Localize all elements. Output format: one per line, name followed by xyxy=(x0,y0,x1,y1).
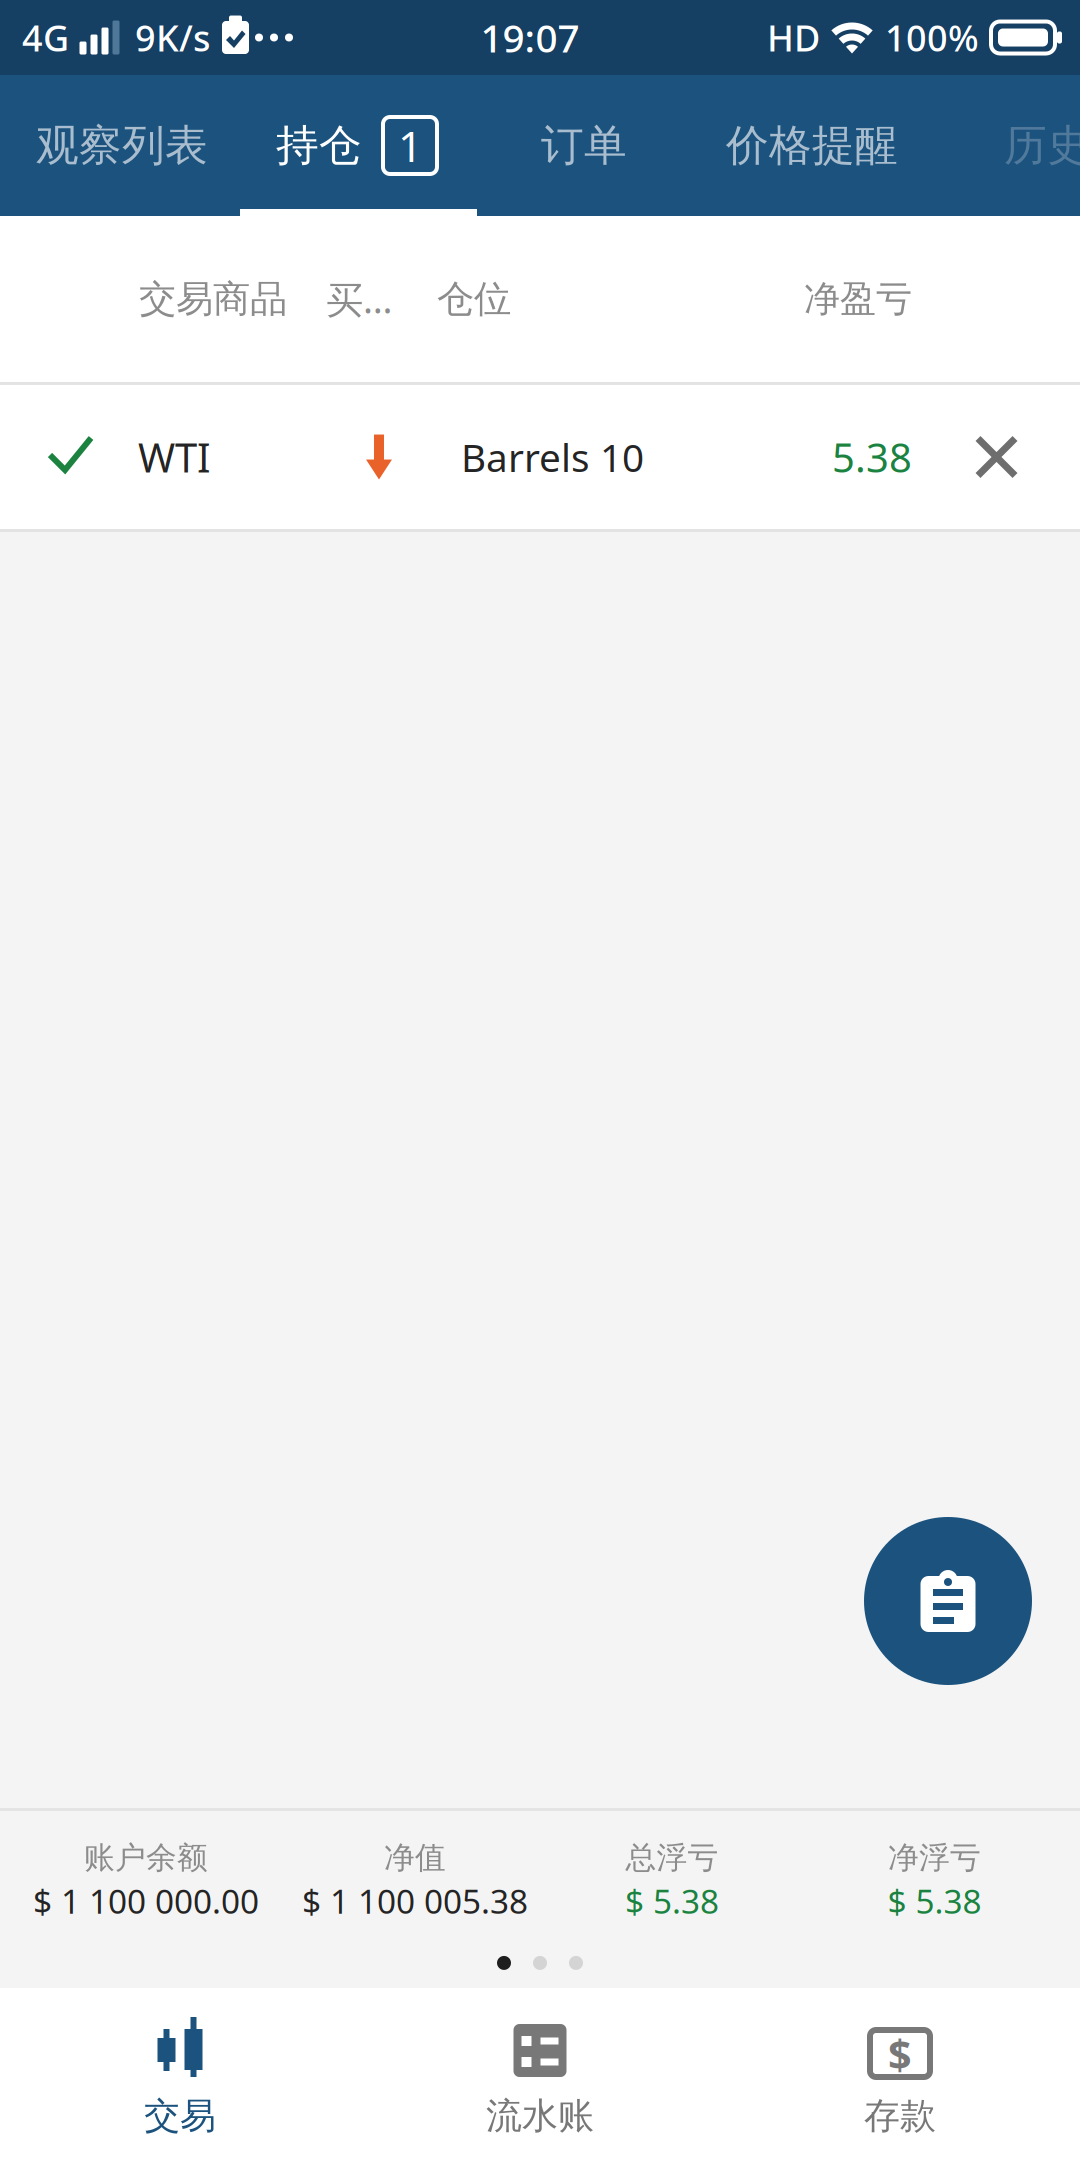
staticText: WTI xyxy=(138,430,211,483)
staticText: 交易 xyxy=(144,2094,216,2138)
staticText: 交易商品 xyxy=(139,276,287,322)
staticText: Barrels 10 xyxy=(461,431,644,483)
staticText: 买… xyxy=(326,274,393,324)
staticText: 订单 xyxy=(541,119,627,172)
staticText: $ 5.38 xyxy=(887,1879,981,1923)
staticText: 净浮亏 xyxy=(888,1839,981,1877)
staticText: 19:07 xyxy=(480,12,579,63)
button[interactable]: 历史 xyxy=(913,75,1080,216)
staticText: 净值 xyxy=(384,1839,446,1877)
staticText: 仓位 xyxy=(437,276,511,322)
staticText: 价格提醒 xyxy=(726,119,898,172)
staticText: 9K/s xyxy=(135,14,210,61)
staticText: HD xyxy=(767,14,820,61)
button[interactable]: 订单 xyxy=(474,75,642,216)
staticText: 100% xyxy=(885,14,979,61)
staticText: 5.38 xyxy=(832,430,912,483)
button[interactable]: 交易 xyxy=(0,1988,360,2160)
button[interactable]: 价格提醒 xyxy=(642,75,913,216)
staticText: $ 1 100 005.38 xyxy=(302,1879,528,1923)
staticText: 流水账 xyxy=(486,2094,594,2138)
staticText: 历史 xyxy=(1004,119,1080,172)
staticText: 4G xyxy=(22,14,69,61)
staticText: 存款 xyxy=(864,2094,936,2138)
button[interactable]: $ xyxy=(720,1988,1080,2160)
staticText: 净盈亏 xyxy=(804,277,912,321)
staticText: 持仓 xyxy=(276,119,362,172)
staticText: 观察列表 xyxy=(36,119,208,172)
button[interactable]: Close position xyxy=(975,385,1080,529)
button[interactable]: WTI xyxy=(0,385,975,529)
staticText: $ 5.38 xyxy=(625,1879,719,1923)
button[interactable]: 观察列表 xyxy=(0,75,276,216)
staticText: $ 1 100 000.00 xyxy=(33,1879,259,1923)
button[interactable]: 持仓 xyxy=(276,75,474,216)
staticText: 总浮亏 xyxy=(625,1839,718,1877)
staticText: $ xyxy=(888,2026,912,2081)
staticText: 账户余额 xyxy=(84,1839,208,1877)
button[interactable]: New order xyxy=(864,1517,1032,1685)
button[interactable]: 流水账 xyxy=(360,1988,720,2160)
staticText: 1 xyxy=(398,117,422,174)
